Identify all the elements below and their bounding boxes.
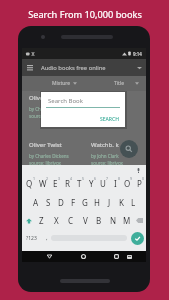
- staticText: I: [114, 178, 117, 189]
- staticText: Search Book: [48, 97, 83, 105]
- button[interactable]: Watchb. k: [91, 141, 143, 165]
- staticText: Oliver Twist: [29, 94, 62, 102]
- staticText: by Charles Dickens: [29, 153, 69, 159]
- button[interactable]: L: [127, 193, 139, 211]
- staticText: source: librivox: [91, 113, 123, 119]
- staticText: by Charles Dickens: [29, 106, 69, 112]
- staticText: E: [53, 178, 58, 189]
- staticText: 8: [118, 176, 121, 181]
- button[interactable]: Title: [114, 76, 139, 91]
- button[interactable]: K: [115, 193, 127, 211]
- staticText: N: [110, 215, 117, 226]
- staticText: 1: [33, 176, 36, 181]
- button[interactable]: Oliver Twist: [29, 141, 81, 165]
- button[interactable]: M: [120, 211, 134, 229]
- button[interactable]: P: [133, 174, 145, 193]
- staticText: M: [123, 215, 131, 226]
- staticText: Oliver Twist: [29, 141, 62, 149]
- staticText: Watchb. k: [91, 141, 119, 149]
- staticText: L: [131, 197, 136, 208]
- button[interactable]: E: [49, 174, 61, 193]
- button[interactable]: J: [103, 193, 115, 211]
- staticText: source: librivox: [29, 160, 61, 165]
- button[interactable]: Moby Dick: [91, 94, 143, 119]
- staticText: SEARCH: [100, 116, 119, 123]
- button[interactable]: Y: [85, 174, 97, 193]
- staticText: G: [82, 197, 88, 208]
- staticText: Search From 10,000 books: [28, 8, 142, 21]
- button[interactable]: Back: [44, 251, 55, 262]
- button[interactable]: More options: [134, 62, 145, 73]
- button[interactable]: ,: [44, 232, 50, 244]
- staticText: 3: [58, 176, 61, 181]
- staticText: 9:14: [133, 51, 142, 57]
- button[interactable]: U: [97, 174, 109, 193]
- button[interactable]: Recent apps: [111, 251, 122, 262]
- button[interactable]: Search: [120, 140, 138, 158]
- button[interactable]: Home: [78, 251, 89, 262]
- staticText: ,: [46, 234, 48, 242]
- button[interactable]: A: [29, 193, 42, 211]
- staticText: 6: [94, 176, 97, 181]
- staticText: W: [39, 178, 47, 189]
- button[interactable]: G: [79, 193, 91, 211]
- staticText: source: librivox: [29, 113, 61, 119]
- staticText: F: [71, 197, 76, 208]
- staticText: Q: [26, 178, 33, 189]
- staticText: 0: [142, 176, 145, 181]
- staticText: U: [100, 178, 106, 189]
- staticText: R: [65, 178, 70, 189]
- button[interactable]: Switch keyboard: [124, 251, 135, 262]
- staticText: Z: [39, 215, 44, 226]
- button[interactable]: H: [91, 193, 103, 211]
- staticText: Title: [114, 80, 124, 87]
- button[interactable]: ?123: [24, 233, 39, 244]
- staticText: P: [137, 178, 142, 189]
- button[interactable]: V: [78, 211, 92, 229]
- staticText: J: [108, 197, 111, 208]
- button[interactable]: Oliver Twist: [29, 94, 81, 119]
- staticText: D: [58, 197, 64, 208]
- button[interactable]: Backspace: [134, 215, 145, 226]
- staticText: 5: [82, 176, 85, 181]
- button[interactable]: T: [73, 174, 85, 193]
- button[interactable]: D: [55, 193, 67, 211]
- button[interactable]: Open navigation menu: [24, 62, 35, 73]
- staticText: 2: [46, 176, 49, 181]
- staticText: 7: [106, 176, 109, 181]
- button[interactable]: O: [121, 174, 133, 193]
- staticText: Mixture: [52, 80, 71, 87]
- staticText: C: [68, 215, 74, 226]
- button[interactable]: W: [36, 174, 49, 193]
- staticText: S: [46, 197, 51, 208]
- button[interactable]: SEARCH: [98, 115, 121, 124]
- staticText: X: [54, 215, 59, 226]
- button[interactable]: N: [106, 211, 120, 229]
- staticText: by John Clark: [91, 153, 119, 159]
- button[interactable]: Q: [23, 174, 36, 193]
- staticText: B: [96, 215, 102, 226]
- staticText: ?123: [26, 235, 37, 242]
- button[interactable]: I: [109, 174, 121, 193]
- staticText: by H Melville: [91, 106, 118, 112]
- button[interactable]: R: [61, 174, 73, 193]
- staticText: source: librivox: [91, 160, 123, 165]
- button[interactable]: X: [49, 211, 64, 229]
- staticText: A: [33, 197, 39, 208]
- staticText: H: [94, 197, 100, 208]
- button[interactable]: C: [64, 211, 78, 229]
- button[interactable]: Voice input: [134, 166, 142, 174]
- button[interactable]: Z: [34, 211, 49, 229]
- button[interactable]: B: [92, 211, 106, 229]
- staticText: T: [77, 178, 82, 189]
- staticText: O: [124, 178, 131, 189]
- button[interactable]: Mixture: [52, 76, 77, 91]
- button[interactable]: F: [67, 193, 79, 211]
- button[interactable]: Done: [131, 232, 144, 245]
- staticText: Y: [89, 178, 94, 189]
- button[interactable]: Shift: [23, 215, 34, 226]
- staticText: 4: [70, 176, 73, 181]
- button[interactable]: S: [42, 193, 55, 211]
